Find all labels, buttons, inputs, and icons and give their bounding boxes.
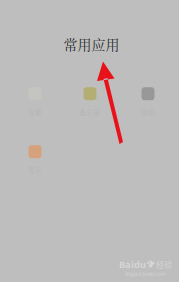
staticText: Baidu bbox=[119, 258, 146, 271]
staticText: 经验 bbox=[156, 259, 172, 270]
button[interactable]: 备忘录 bbox=[67, 88, 113, 116]
button[interactable]: 相机 bbox=[125, 88, 171, 116]
staticText: 常用应用 bbox=[63, 34, 119, 54]
staticText: jingyan.baidu.com bbox=[125, 271, 165, 277]
button[interactable]: 音乐 bbox=[12, 146, 58, 174]
